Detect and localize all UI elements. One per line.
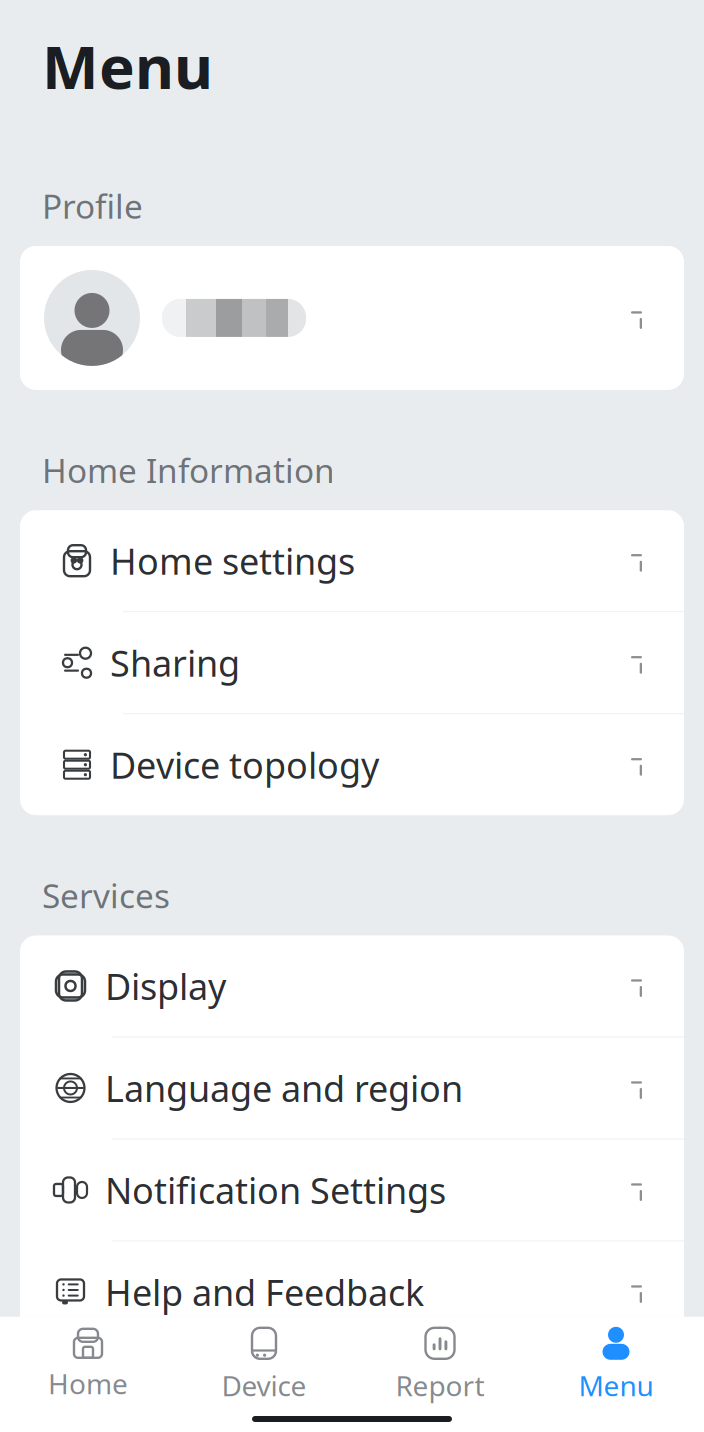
button[interactable]: Report	[352, 1317, 528, 1410]
staticText: Home settings	[110, 537, 355, 585]
staticText: Home Information	[42, 448, 335, 492]
button[interactable]: Help and Feedback	[20, 1241, 684, 1342]
staticText: Sharing	[110, 639, 240, 687]
button[interactable]: Home settings	[20, 510, 684, 611]
button[interactable]: About SOLARMAN Smart	[20, 1343, 684, 1432]
staticText: Menu	[578, 1367, 653, 1404]
button[interactable]: Menu	[528, 1317, 704, 1410]
button[interactable]: Display	[20, 935, 684, 1036]
staticText: Device	[221, 1367, 306, 1404]
staticText: Services	[42, 873, 170, 917]
staticText: Help and Feedback	[105, 1268, 424, 1316]
staticText: Menu	[42, 26, 213, 106]
staticText: Display	[105, 962, 226, 1010]
button[interactable]: Device topology	[20, 714, 684, 815]
button[interactable]: Notification Settings	[20, 1139, 684, 1240]
button[interactable]	[20, 246, 684, 390]
button[interactable]: Home	[0, 1319, 176, 1408]
staticText: Profile	[42, 184, 143, 228]
staticText: About SOLARMAN Smart	[105, 1370, 522, 1418]
staticText: Home	[48, 1365, 128, 1402]
button[interactable]: Device	[176, 1317, 352, 1410]
staticText: Report	[395, 1367, 484, 1404]
staticText: Language and region	[105, 1064, 463, 1112]
staticText: Device topology	[110, 741, 379, 789]
button[interactable]: Sharing	[20, 612, 684, 713]
staticText: Notification Settings	[105, 1166, 446, 1214]
button[interactable]: Language and region	[20, 1037, 684, 1138]
